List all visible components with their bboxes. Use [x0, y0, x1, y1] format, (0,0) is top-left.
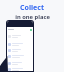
staticText: Collect	[20, 3, 44, 13]
staticText: in one place	[15, 13, 50, 21]
button[interactable]	[7, 21, 33, 71]
